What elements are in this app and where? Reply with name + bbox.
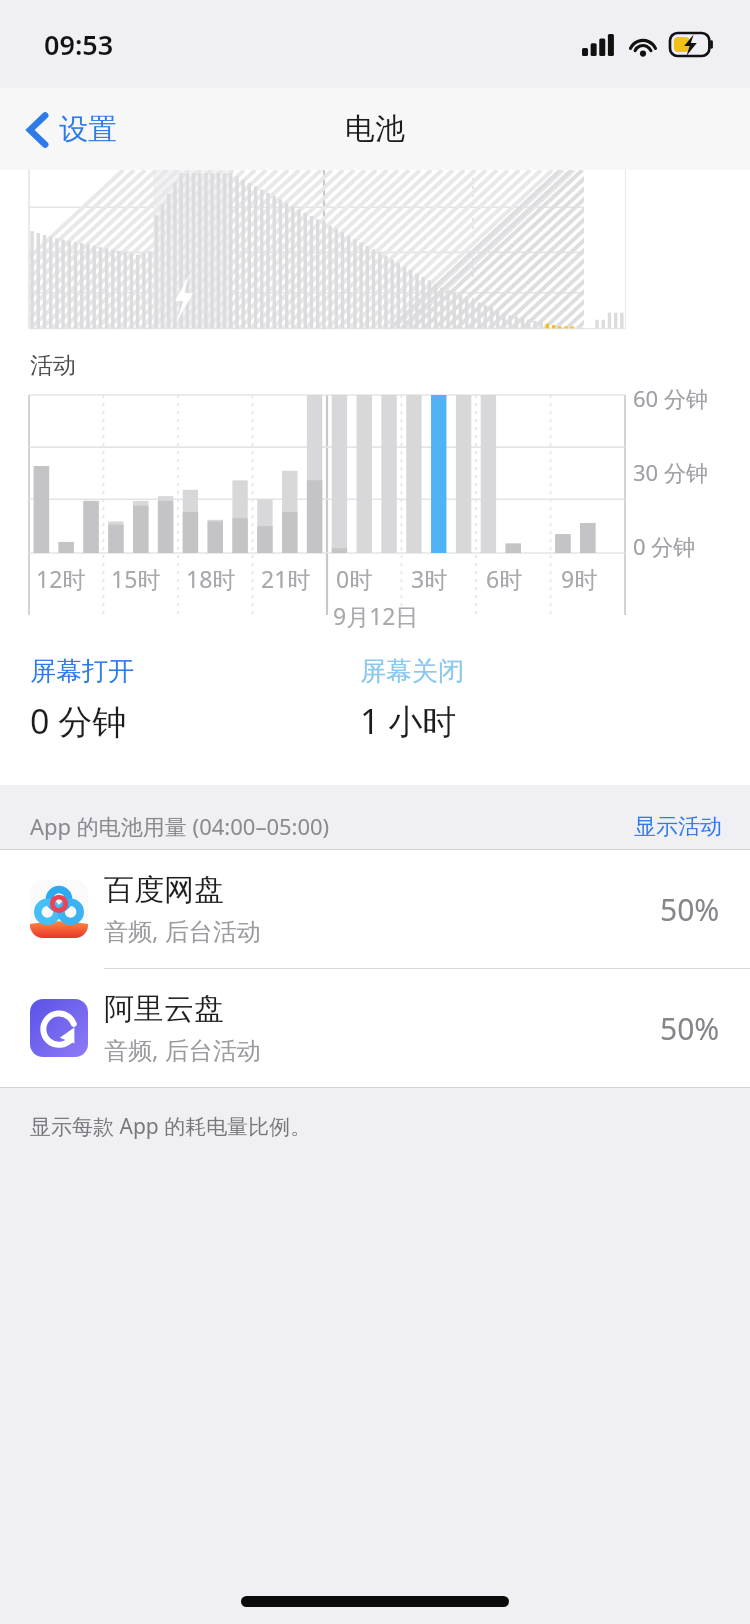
staticText: 12时 xyxy=(36,563,86,594)
staticText: 9月12日 xyxy=(333,600,419,631)
staticText: 电池 xyxy=(345,110,405,148)
staticText: 0 分钟 xyxy=(633,531,696,561)
staticText: 活动 xyxy=(30,351,76,380)
staticText: 21时 xyxy=(261,563,311,594)
staticText: 屏幕打开 xyxy=(30,655,134,688)
button[interactable]: 设置 xyxy=(20,103,125,156)
staticText: 15时 xyxy=(111,563,161,594)
staticText: 百度网盘 xyxy=(104,871,224,909)
staticText: 18时 xyxy=(186,563,236,594)
button[interactable]: 阿里云盘 xyxy=(0,969,750,1087)
staticText: 音频, 后台活动 xyxy=(104,914,261,947)
staticText: 0时 xyxy=(336,563,373,594)
staticText: 50% xyxy=(660,1008,720,1049)
button[interactable]: 显示活动 xyxy=(628,809,728,845)
staticText: 显示活动 xyxy=(634,813,722,841)
other: 百度网盘 xyxy=(30,880,88,938)
staticText: 3时 xyxy=(411,563,448,594)
staticText: 显示每款 App 的耗电量比例。 xyxy=(30,1112,312,1141)
staticText: 1 小时 xyxy=(360,698,457,744)
staticText: 屏幕关闭 xyxy=(360,655,464,688)
staticText: App 的电池用量 (04:00–05:00) xyxy=(30,811,330,841)
staticText: 60 分钟 xyxy=(633,383,708,413)
staticText: 50% xyxy=(660,889,720,930)
other: 阿里云盘 xyxy=(30,999,88,1057)
staticText: 30 分钟 xyxy=(633,457,708,487)
button[interactable]: 百度网盘 xyxy=(0,850,750,968)
staticText: 09:53 xyxy=(44,26,114,63)
staticText: 9时 xyxy=(561,563,598,594)
staticText: 音频, 后台活动 xyxy=(104,1033,261,1066)
staticText: 阿里云盘 xyxy=(104,990,224,1028)
staticText: 0 分钟 xyxy=(30,698,127,744)
staticText: 6时 xyxy=(486,563,523,594)
staticText: 设置 xyxy=(59,111,117,148)
